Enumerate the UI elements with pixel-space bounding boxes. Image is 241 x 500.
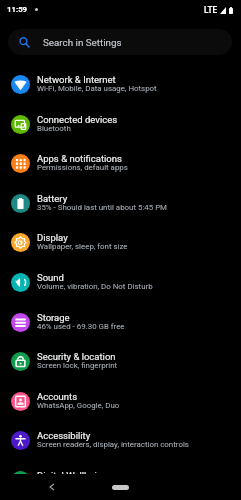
staticText: Battery [37,193,68,204]
button[interactable]: Sound [0,262,241,302]
button[interactable]: Digital Wellbeing [0,460,241,474]
staticText: LTE [204,5,218,15]
button[interactable]: Home [112,485,129,490]
staticText: Connected devices [37,114,118,125]
staticText: Screen lock, fingerprint [37,361,118,370]
button[interactable]: Display [0,222,241,262]
staticText: Storage [37,312,70,323]
staticText: Wallpaper, sleep, font size [37,242,128,251]
button[interactable]: Storage [0,302,241,342]
staticText: Search in Settings [43,37,122,48]
staticText: Network & Internet [37,74,116,85]
staticText: 35% - Should last until about 5:45 PM [37,203,168,212]
staticText: Display [37,232,68,243]
button[interactable]: Apps & notifications [0,143,241,183]
button[interactable]: Accounts [0,381,241,421]
staticText: Security & location [37,351,116,362]
staticText: 11:59 [7,5,28,14]
staticText: Sound [37,272,64,283]
staticText: WhatsApp, Google, Duo [37,401,120,410]
button[interactable]: Network & Internet [0,64,241,104]
staticText: 46% used - 69.30 GB free [37,322,125,331]
button[interactable]: Connected devices [0,104,241,144]
staticText: Screen readers, display, interaction con… [37,440,189,449]
staticText: Apps & notifications [37,153,122,164]
staticText: Bluetooth [37,124,71,133]
button[interactable]: Accessibility [0,420,241,460]
staticText: Accounts [37,391,78,402]
staticText: Digital Wellbeing [37,470,108,474]
button[interactable]: Search in Settings [8,29,232,55]
button[interactable]: Battery [0,183,241,223]
staticText: Volume, vibration, Do Not Disturb [37,282,153,291]
button[interactable]: Security & location [0,341,241,381]
staticText: Permissions, default apps [37,163,128,172]
staticText: Accessibility [37,430,91,441]
button[interactable]: Back [44,479,60,495]
staticText: Wi-Fi, Mobile, Data usage, Hotspot [37,84,157,93]
